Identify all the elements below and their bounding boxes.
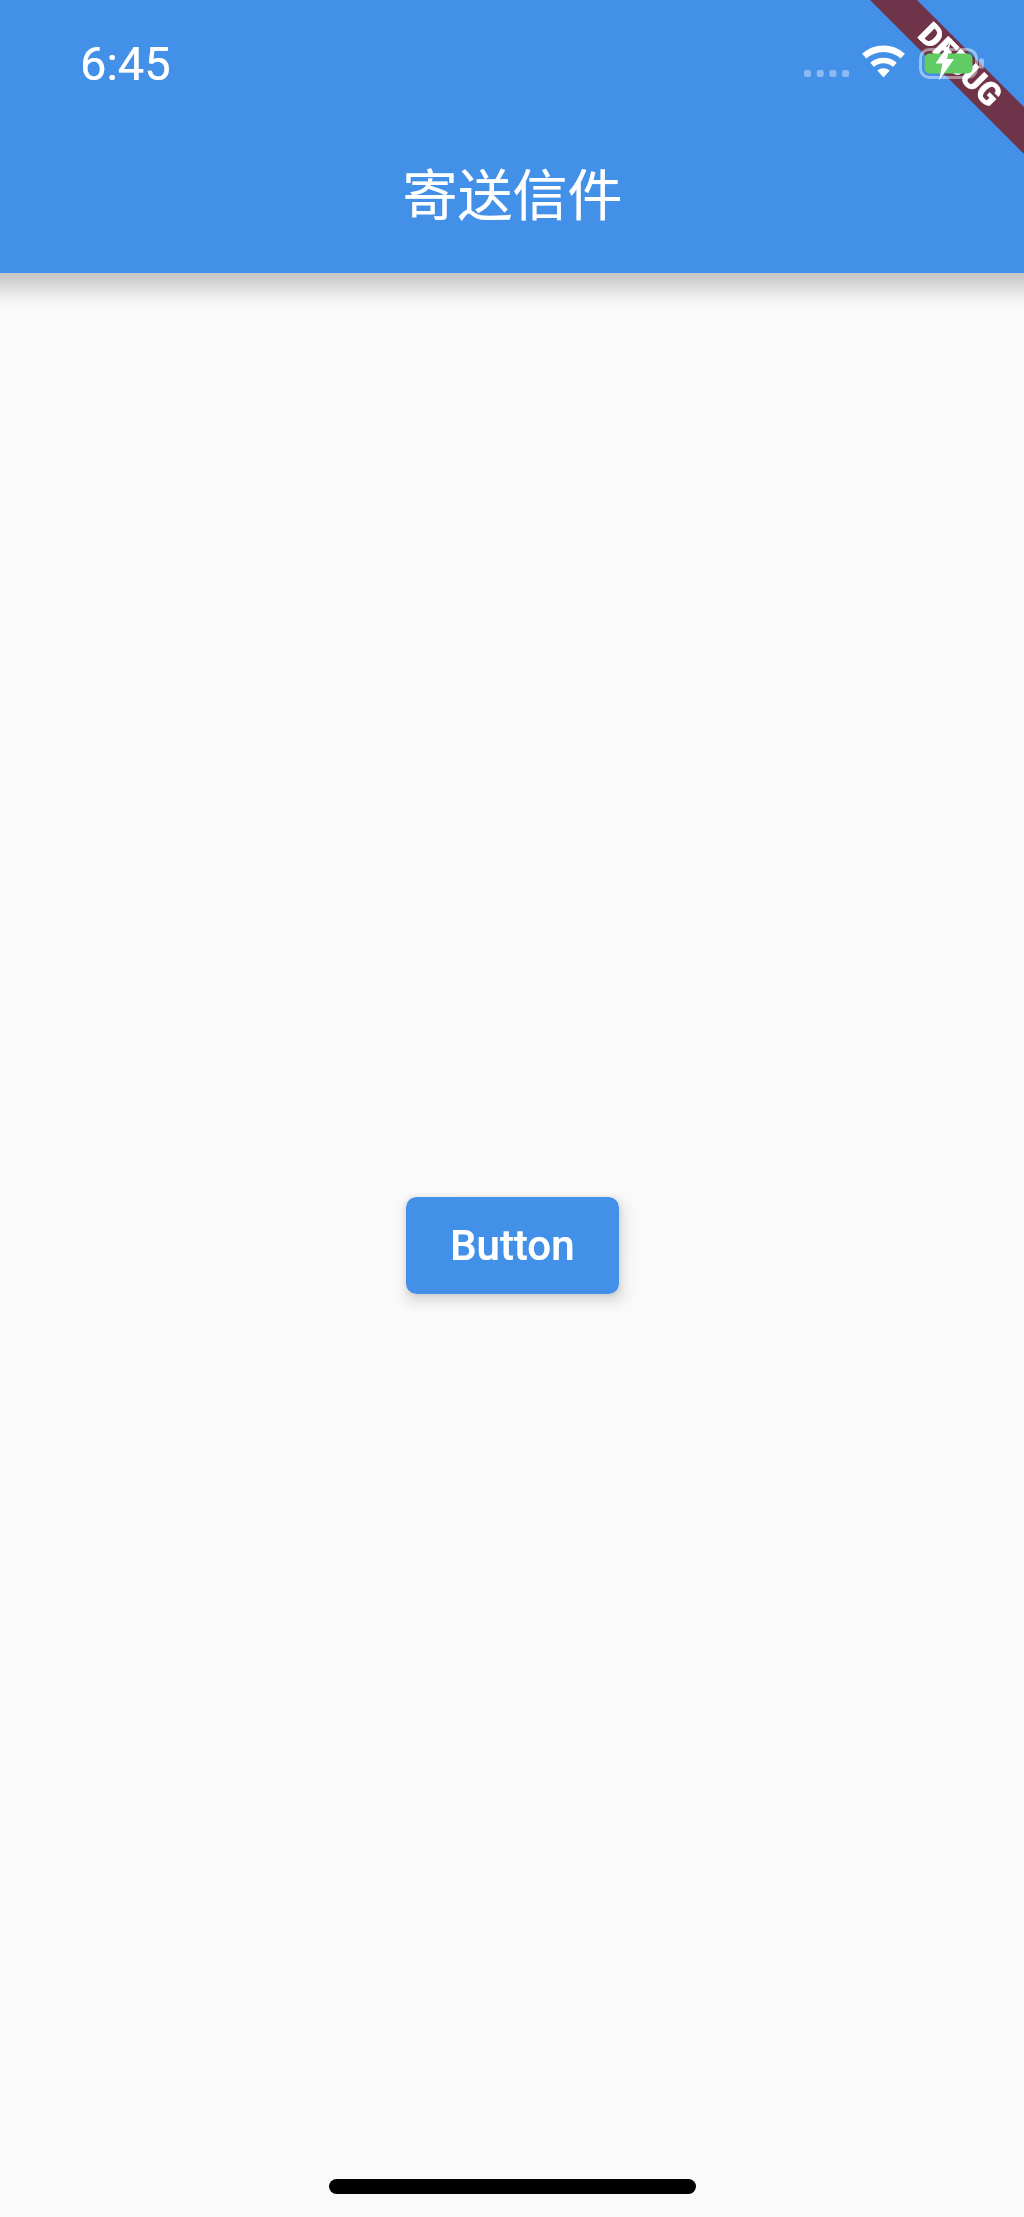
button[interactable]: Button [406, 1197, 619, 1294]
other: Wi-Fi [862, 48, 905, 79]
staticText: 寄送信件 [402, 151, 623, 231]
staticText: 6:45 [80, 36, 171, 91]
staticText: Button [450, 1221, 575, 1270]
other: Battery charging [919, 48, 984, 79]
